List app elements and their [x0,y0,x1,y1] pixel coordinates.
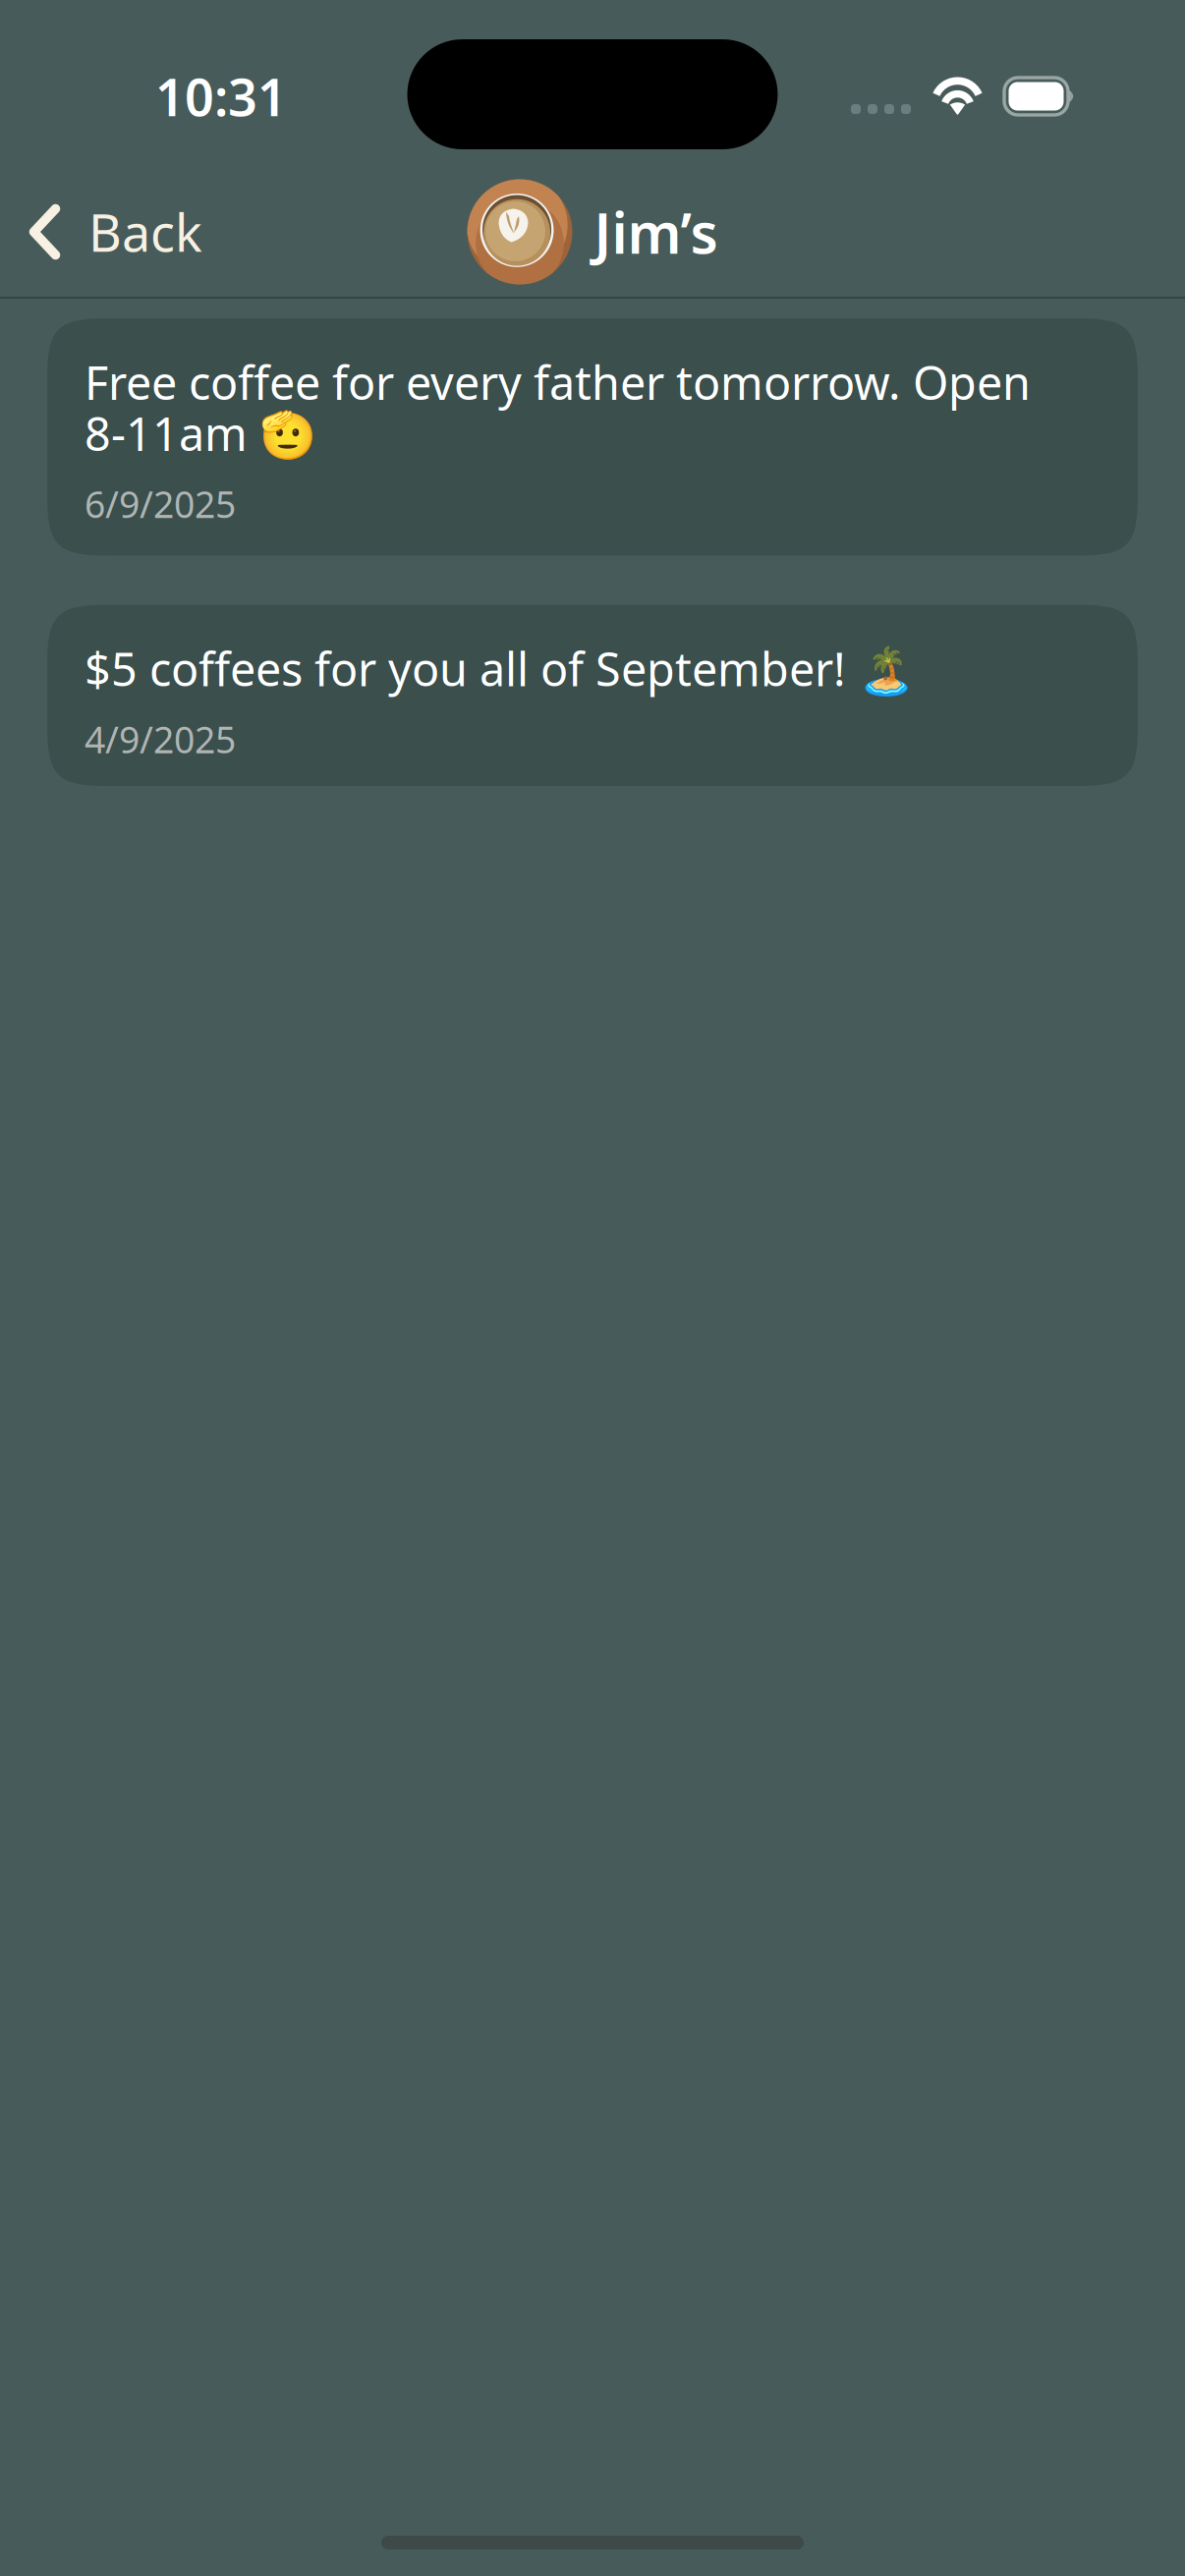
staticText: Back [88,198,202,266]
button[interactable]: Jim’s [455,174,730,290]
button[interactable]: Free coffee for every father tomorrow. O… [47,318,1138,556]
staticText: Jim’s [594,194,718,269]
button[interactable]: $5 coffees for you all of September! 🏝️ [47,605,1138,786]
staticText: 6/9/2025 [85,479,236,528]
staticText: 10:31 [155,62,287,130]
staticText: $5 coffees for you all of September! 🏝️ [85,638,915,699]
staticText: Free coffee for every father tomorrow. O… [85,352,1031,464]
button[interactable]: Back [0,167,224,297]
staticText: 4/9/2025 [85,715,236,763]
